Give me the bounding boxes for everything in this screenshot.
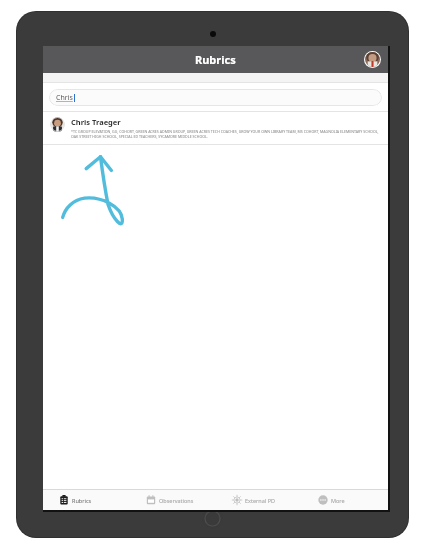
button[interactable]: Chris — [49, 89, 382, 106]
button[interactable]: Chris Traeger — [43, 112, 388, 144]
staticText: Rubrics — [195, 52, 236, 67]
staticText: Rubrics — [72, 497, 92, 504]
staticText: Chris Traeger — [71, 117, 121, 127]
button[interactable]: More — [302, 490, 388, 510]
button[interactable]: Rubrics — [43, 490, 130, 510]
button[interactable]: External PD — [216, 490, 302, 510]
staticText: External PD — [245, 497, 276, 504]
button[interactable]: Account — [364, 51, 381, 68]
staticText: *TC GROUP ELEVATION, GG, COHORT, GREEN A… — [71, 129, 380, 139]
other: Home — [202, 508, 223, 529]
staticText: More — [331, 497, 345, 504]
staticText: Chris — [56, 93, 73, 103]
staticText: Observations — [159, 497, 194, 504]
button[interactable]: Observations — [130, 490, 216, 510]
